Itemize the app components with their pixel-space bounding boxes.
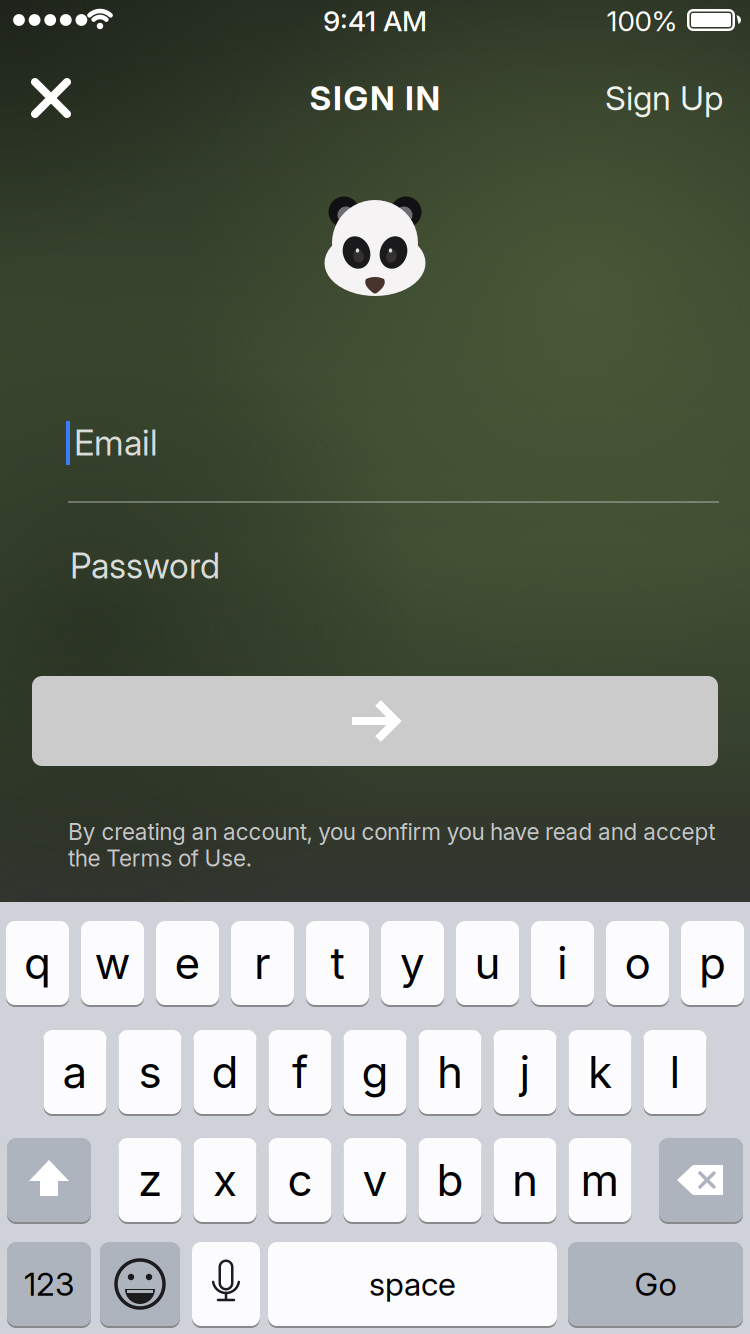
button[interactable]: Emoji xyxy=(100,1242,180,1326)
staticText: i xyxy=(557,937,568,989)
staticText: p xyxy=(699,937,726,989)
button[interactable]: t xyxy=(306,921,369,1005)
staticText: t xyxy=(330,937,344,989)
staticText: the Terms of Use. xyxy=(68,845,252,872)
button[interactable]: q xyxy=(6,921,69,1005)
button[interactable]: Shift xyxy=(7,1138,91,1222)
staticText: z xyxy=(138,1154,162,1206)
button[interactable]: f xyxy=(268,1030,331,1114)
staticText: y xyxy=(400,937,425,989)
button[interactable]: u xyxy=(456,921,519,1005)
button[interactable]: o xyxy=(606,921,669,1005)
button[interactable]: n xyxy=(493,1138,556,1222)
button[interactable]: space xyxy=(268,1242,557,1326)
button[interactable]: z xyxy=(118,1138,181,1222)
button[interactable]: b xyxy=(418,1138,481,1222)
button[interactable]: 123 xyxy=(7,1242,91,1326)
staticText: Email xyxy=(74,423,158,463)
staticText: j xyxy=(519,1046,530,1098)
button[interactable]: x xyxy=(193,1138,256,1222)
staticText: space xyxy=(369,1265,456,1303)
staticText: Go xyxy=(634,1265,676,1303)
staticText: Sign Up xyxy=(605,78,723,118)
button[interactable]: Dictate xyxy=(192,1242,260,1326)
button[interactable]: e xyxy=(156,921,219,1005)
staticText: o xyxy=(624,937,650,989)
button[interactable]: k xyxy=(568,1030,631,1114)
staticText: n xyxy=(512,1154,538,1206)
staticText: a xyxy=(62,1046,87,1098)
staticText: SIGN IN xyxy=(309,78,440,118)
button[interactable]: v xyxy=(343,1138,406,1222)
button[interactable]: w xyxy=(81,921,144,1005)
staticText: g xyxy=(361,1046,388,1098)
button[interactable]: g xyxy=(343,1030,406,1114)
staticText: e xyxy=(174,937,200,989)
button[interactable]: Sign In xyxy=(32,676,718,766)
button[interactable]: s xyxy=(118,1030,181,1114)
button[interactable]: l xyxy=(643,1030,706,1114)
staticText: l xyxy=(669,1046,680,1098)
staticText: 9:41 AM xyxy=(323,4,427,37)
button[interactable]: i xyxy=(531,921,594,1005)
staticText: q xyxy=(24,937,51,989)
staticText: 123 xyxy=(24,1265,74,1303)
staticText: s xyxy=(138,1046,161,1098)
staticText: u xyxy=(474,937,500,989)
staticText: m xyxy=(580,1154,619,1206)
staticText: h xyxy=(437,1046,463,1098)
button[interactable]: Close xyxy=(27,74,75,122)
button[interactable]: m xyxy=(568,1138,631,1222)
staticText: x xyxy=(213,1154,237,1206)
staticText: r xyxy=(254,937,271,989)
button[interactable]: y xyxy=(381,921,444,1005)
button[interactable]: c xyxy=(268,1138,331,1222)
button[interactable]: a xyxy=(43,1030,106,1114)
staticText: d xyxy=(211,1046,238,1098)
button[interactable]: p xyxy=(681,921,744,1005)
button[interactable]: h xyxy=(418,1030,481,1114)
button[interactable]: d xyxy=(193,1030,256,1114)
staticText: By creating an account, you confirm you … xyxy=(68,818,715,845)
staticText: f xyxy=(292,1046,308,1098)
button[interactable]: Delete xyxy=(659,1138,743,1222)
button[interactable]: Go xyxy=(568,1242,743,1326)
button[interactable]: r xyxy=(231,921,294,1005)
staticText: c xyxy=(287,1154,312,1206)
button[interactable]: Sign Up xyxy=(605,78,723,118)
staticText: Password xyxy=(70,546,220,586)
staticText: v xyxy=(362,1154,387,1206)
staticText: k xyxy=(588,1046,612,1098)
staticText: 100% xyxy=(606,4,677,37)
button[interactable]: j xyxy=(493,1030,556,1114)
staticText: w xyxy=(94,937,130,989)
staticText: b xyxy=(436,1154,463,1206)
